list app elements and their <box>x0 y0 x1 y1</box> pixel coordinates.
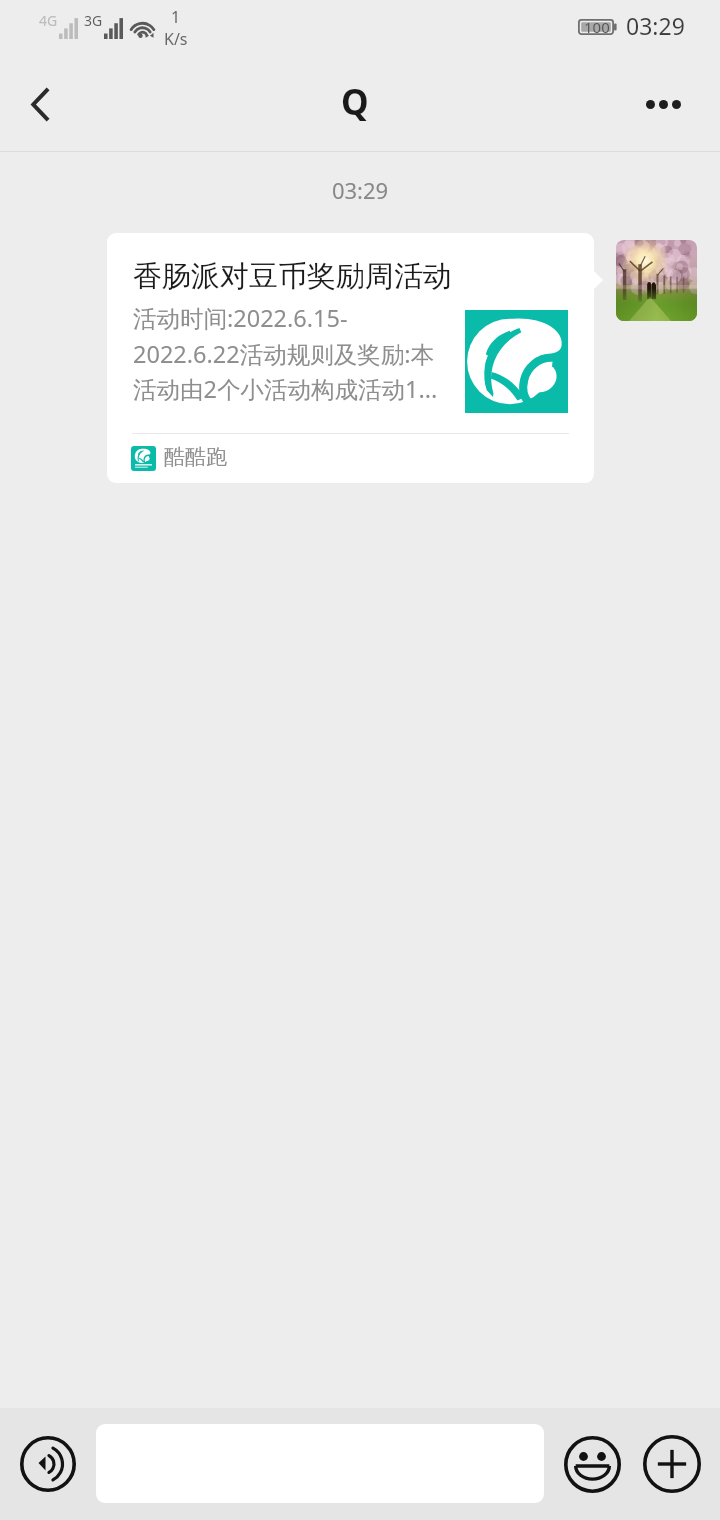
staticText: 1 <box>171 6 181 28</box>
button[interactable]: More options <box>624 62 720 152</box>
button[interactable]: Back <box>0 62 78 152</box>
staticText: 100 <box>584 17 610 37</box>
staticText: 香肠派对豆币奖励周活动 <box>133 258 452 295</box>
button[interactable]: Emoji <box>558 1430 626 1498</box>
staticText: 4G <box>39 11 58 30</box>
button[interactable]: Voice input <box>14 1430 82 1498</box>
staticText: 活动时间:2022.6.15- 2022.6.22活动规则及奖励:本 活动由2个… <box>133 302 478 405</box>
staticText: 03:29 <box>626 10 685 41</box>
button[interactable]: 香肠派对豆币奖励周活动 <box>107 233 594 483</box>
button[interactable]: Avatar <box>616 240 697 321</box>
staticText: 酷酷跑 <box>164 444 227 470</box>
staticText: 03:29 <box>0 175 720 205</box>
button[interactable]: More <box>638 1430 706 1498</box>
staticText: Q <box>341 78 369 126</box>
staticText: 3G <box>84 11 103 30</box>
staticText: K/s <box>164 28 188 50</box>
